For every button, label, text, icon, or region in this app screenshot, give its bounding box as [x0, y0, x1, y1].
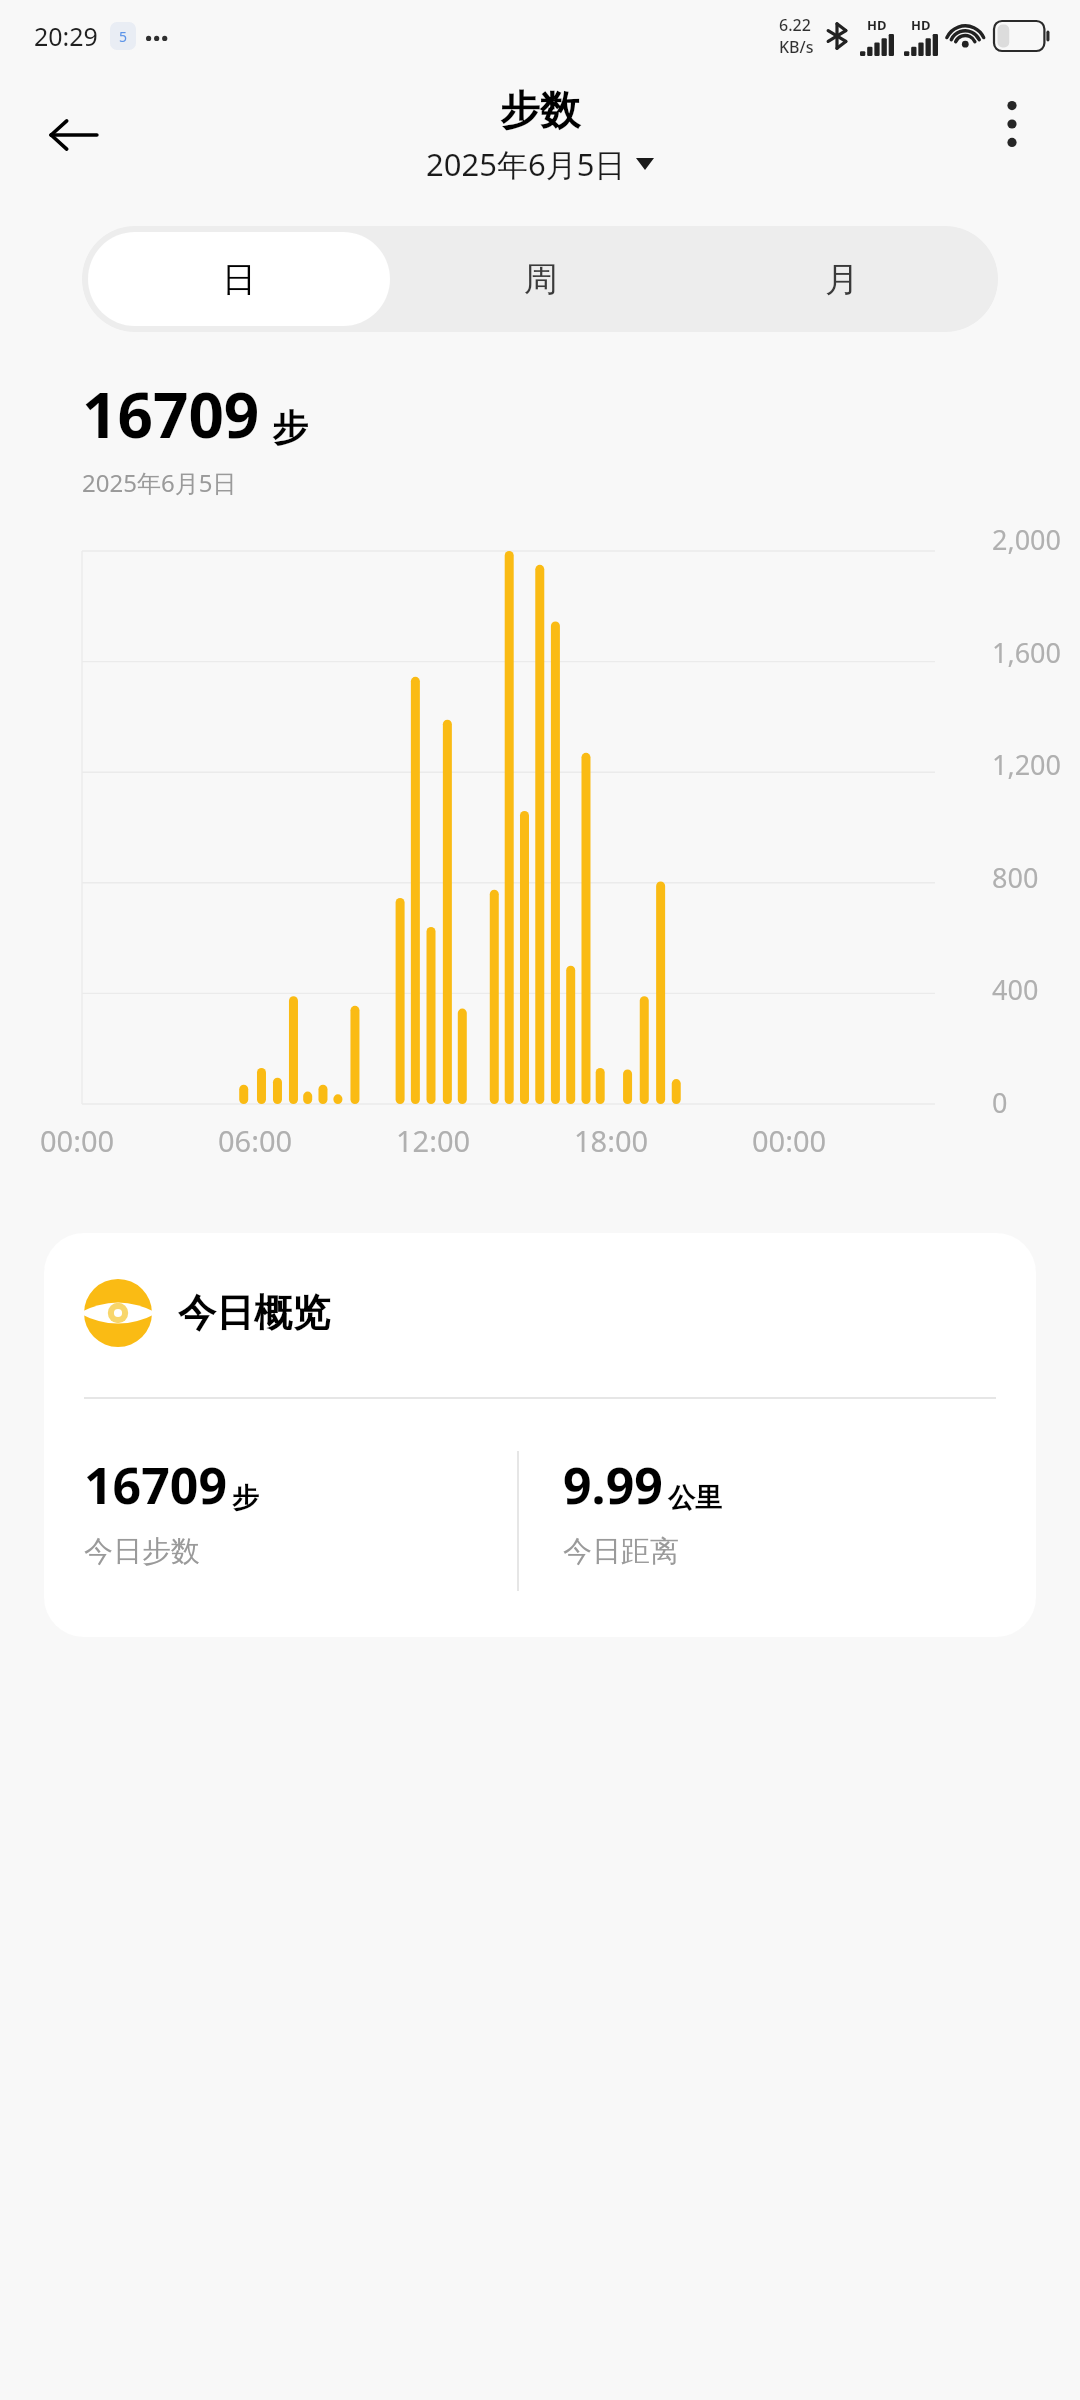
staticText: HD [867, 16, 887, 34]
staticText: 2,000 [992, 521, 1062, 558]
staticText: 400 [992, 971, 1039, 1008]
staticText: 16709 [82, 372, 260, 456]
staticText: 今日距离 [563, 1533, 679, 1570]
staticText: 1,600 [992, 634, 1062, 671]
staticText: 2025年6月5日 [82, 466, 237, 499]
button[interactable]: 日 [88, 232, 390, 326]
staticText: 00:00 [752, 1121, 827, 1160]
button[interactable]: 周 [390, 232, 691, 326]
staticText: 今日概览 [178, 1289, 330, 1337]
staticText: 06:00 [218, 1121, 293, 1160]
button[interactable]: 2025年6月5日 [426, 143, 654, 185]
staticText: 月 [825, 258, 859, 301]
staticText: 日 [222, 258, 256, 301]
staticText: 步 [272, 405, 308, 450]
staticText: 周 [524, 258, 558, 301]
button[interactable]: 月 [691, 232, 992, 326]
staticText: 6.22 [779, 14, 811, 36]
staticText: 18:00 [574, 1121, 649, 1160]
button[interactable]: Back [34, 95, 114, 175]
staticText: 步数 [500, 85, 580, 135]
staticText: 公里 [668, 1481, 722, 1515]
staticText: 今日步数 [84, 1533, 200, 1570]
button[interactable]: 今日概览 [44, 1233, 1036, 1637]
staticText: 9.99 [563, 1451, 663, 1519]
staticText: 800 [992, 859, 1039, 896]
staticText: 步 [232, 1481, 259, 1515]
staticText: 0 [992, 1084, 1008, 1121]
staticText: KB/s [779, 36, 814, 58]
staticText: 1,200 [992, 746, 1062, 783]
staticText: 00:00 [40, 1121, 115, 1160]
staticText: 2025年6月5日 [426, 143, 626, 185]
staticText: 20:29 [34, 19, 98, 53]
staticText: 5 [119, 27, 128, 46]
staticText: HD [911, 16, 931, 34]
button[interactable]: More options [974, 86, 1050, 162]
staticText: 12:00 [396, 1121, 471, 1160]
staticText: 16709 [84, 1451, 227, 1519]
